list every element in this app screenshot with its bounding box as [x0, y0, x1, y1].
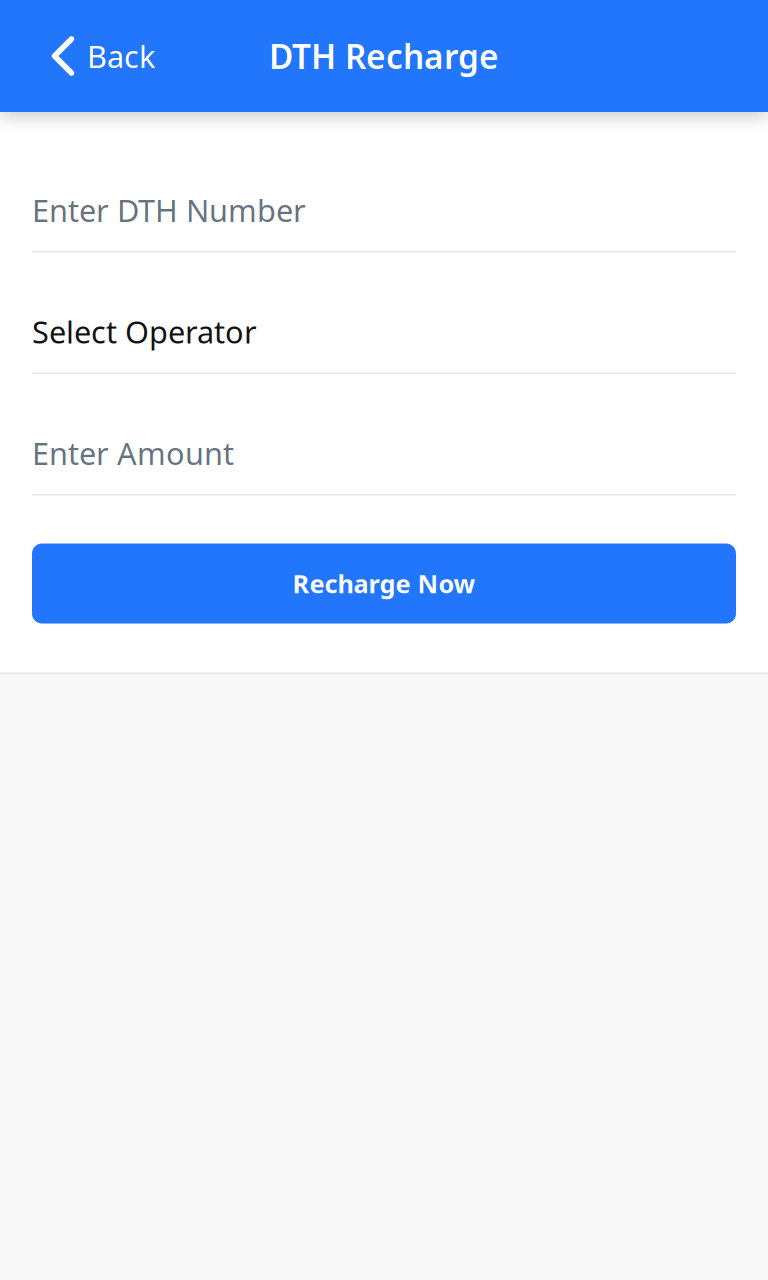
button[interactable]: Recharge Now — [32, 543, 736, 623]
button[interactable]: Select Operator — [32, 252, 736, 374]
button[interactable]: Back — [0, 0, 179, 112]
staticText: DTH Recharge — [269, 34, 499, 78]
staticText: Select Operator — [32, 311, 257, 352]
staticText: Enter Amount — [32, 433, 234, 473]
button[interactable]: Enter DTH Number — [32, 131, 736, 252]
staticText: Back — [87, 36, 155, 76]
staticText: Recharge Now — [292, 567, 475, 600]
button[interactable]: Enter Amount — [32, 374, 736, 495]
staticText: Enter DTH Number — [32, 190, 306, 230]
